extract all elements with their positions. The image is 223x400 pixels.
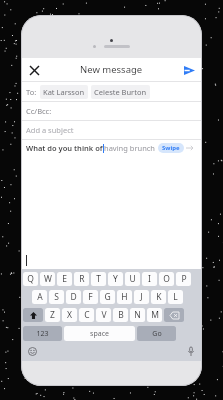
- button[interactable]: Add a subject: [21, 121, 202, 139]
- button[interactable]: A: [32, 290, 47, 304]
- button[interactable]: space: [64, 326, 135, 341]
- staticText: Go: [152, 329, 162, 339]
- button[interactable]: H: [117, 290, 132, 304]
- staticText: Add a subject: [26, 125, 74, 135]
- staticText: Cc/Bcc:: [26, 106, 52, 116]
- button[interactable]: Swipe: [158, 143, 184, 153]
- staticText: What do you think of: [26, 143, 103, 153]
- button[interactable]: I: [142, 272, 157, 286]
- button[interactable]: Shift: [23, 308, 43, 322]
- button[interactable]: V: [96, 308, 111, 322]
- button[interactable]: C: [79, 308, 94, 322]
- staticText: W: [44, 273, 52, 285]
- button[interactable]: B: [113, 308, 128, 322]
- staticText: R: [79, 273, 85, 285]
- button[interactable]: L: [168, 290, 183, 304]
- staticText: L: [173, 291, 178, 303]
- staticText: D: [70, 291, 77, 303]
- button[interactable]: M: [147, 308, 162, 322]
- button[interactable]: O: [159, 272, 174, 286]
- staticText: To:: [26, 87, 37, 97]
- staticText: U: [129, 273, 136, 285]
- staticText: A: [37, 291, 43, 303]
- staticText: 123: [36, 329, 49, 339]
- staticText: Z: [50, 309, 55, 321]
- staticText: Kat Larsson: [43, 87, 85, 97]
- staticText: G: [104, 291, 111, 303]
- button[interactable]: Send: [180, 61, 198, 79]
- button[interactable]: J: [134, 290, 149, 304]
- button[interactable]: F: [83, 290, 98, 304]
- button[interactable]: Emoji: [25, 344, 39, 358]
- staticText: C: [84, 309, 90, 321]
- button[interactable]: Close: [25, 61, 43, 79]
- staticText: K: [156, 291, 162, 303]
- staticText: Swipe: [162, 144, 180, 152]
- button[interactable]: U: [125, 272, 140, 286]
- button[interactable]: T: [91, 272, 106, 286]
- staticText: H: [121, 291, 128, 303]
- button[interactable]: Z: [45, 308, 60, 322]
- staticText: M: [151, 309, 159, 321]
- staticText: space: [90, 329, 109, 339]
- staticText: O: [163, 273, 170, 285]
- button[interactable]: D: [66, 290, 81, 304]
- staticText: S: [54, 291, 59, 303]
- staticText: F: [88, 291, 93, 303]
- staticText: E: [62, 273, 67, 285]
- button[interactable]: Voice input: [184, 344, 198, 358]
- button[interactable]: P: [176, 272, 191, 286]
- button[interactable]: G: [100, 290, 115, 304]
- staticText: B: [118, 309, 124, 321]
- staticText: J: [140, 291, 143, 303]
- staticText: Y: [113, 273, 118, 285]
- button[interactable]: Backspace: [164, 308, 184, 322]
- staticText: N: [134, 309, 141, 321]
- button[interactable]: S: [49, 290, 64, 304]
- staticText: P: [181, 273, 187, 285]
- button[interactable]: X: [62, 308, 77, 322]
- staticText: Celeste Burton: [94, 87, 147, 97]
- staticText: I: [148, 273, 151, 285]
- button[interactable]: W: [40, 272, 55, 286]
- button[interactable]: R: [74, 272, 89, 286]
- staticText: X: [67, 309, 72, 321]
- button[interactable]: Y: [108, 272, 123, 286]
- button[interactable]: Q: [23, 272, 38, 286]
- staticText: T: [96, 273, 101, 285]
- button[interactable]: Go: [137, 326, 176, 341]
- button[interactable]: N: [130, 308, 145, 322]
- staticText: Q: [27, 273, 34, 285]
- button[interactable]: To:: [21, 82, 202, 101]
- staticText: having brunch: [104, 143, 155, 153]
- staticText: V: [101, 309, 107, 321]
- button[interactable]: Cc/Bcc:: [21, 102, 202, 120]
- button[interactable]: K: [151, 290, 166, 304]
- button[interactable]: E: [57, 272, 72, 286]
- button[interactable]: 123: [23, 326, 62, 341]
- staticText: New message: [80, 63, 143, 76]
